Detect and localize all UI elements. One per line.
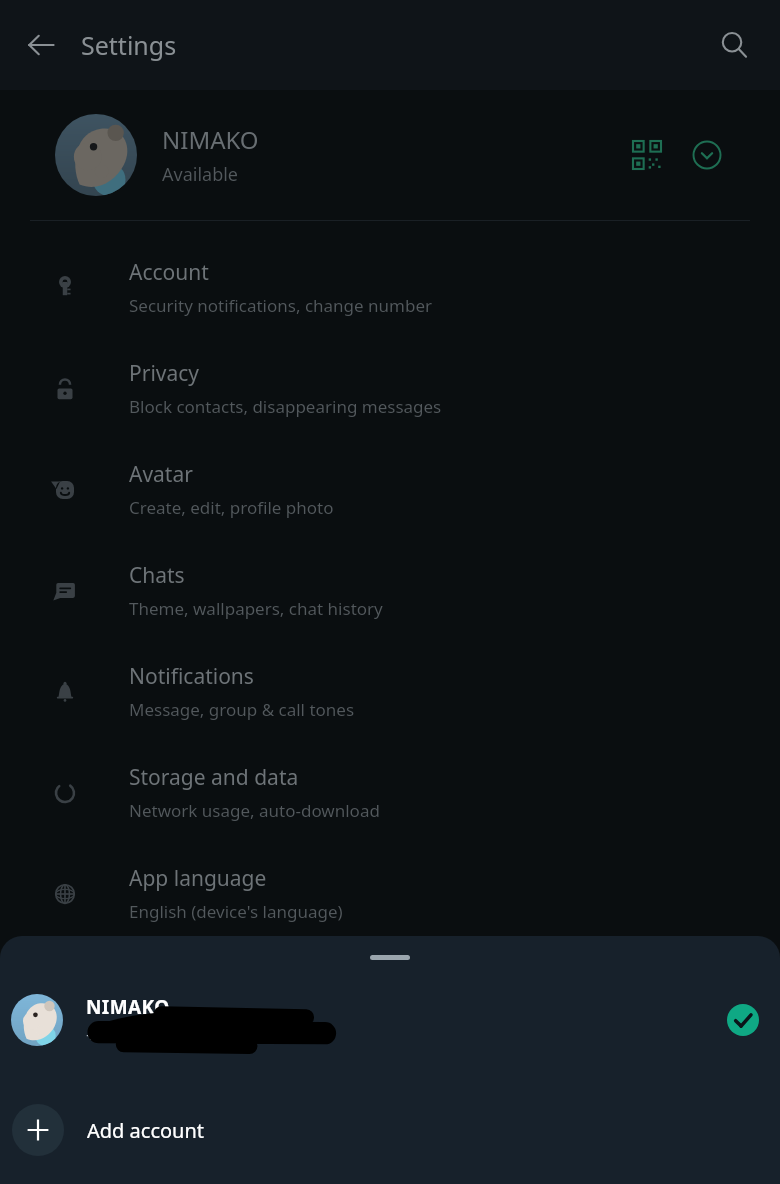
- button[interactable]: Expand accounts: [679, 127, 735, 183]
- staticText: English (device's language): [129, 900, 343, 923]
- button[interactable]: Add account: [0, 1080, 780, 1180]
- staticText: App language: [129, 864, 267, 893]
- staticText: Block contacts, disappearing messages: [129, 395, 442, 418]
- staticText: Add account: [87, 1117, 205, 1144]
- staticText: Storage and data: [129, 763, 299, 792]
- staticText: Security notifications, change number: [129, 294, 433, 317]
- staticText: Theme, wallpapers, chat history: [129, 597, 383, 620]
- staticText: +00 000 000 0000: [86, 1024, 226, 1047]
- staticText: Message, group & call tones: [129, 698, 355, 721]
- staticText: Settings: [81, 28, 177, 62]
- button[interactable]: Avatar: [0, 439, 780, 540]
- staticText: NIMAKO: [162, 123, 259, 156]
- button[interactable]: QR code: [619, 127, 675, 183]
- button[interactable]: Search: [704, 15, 764, 75]
- button[interactable]: NIMAKO: [0, 970, 780, 1070]
- button[interactable]: Storage and data: [0, 742, 780, 843]
- button[interactable]: Account: [0, 237, 780, 338]
- staticText: Create, edit, profile photo: [129, 496, 334, 519]
- button[interactable]: App language: [0, 843, 780, 944]
- button[interactable]: Notifications: [0, 641, 780, 742]
- staticText: Network usage, auto-download: [129, 799, 380, 822]
- button[interactable]: Chats: [0, 540, 780, 641]
- button[interactable]: Privacy: [0, 338, 780, 439]
- staticText: NIMAKO: [86, 994, 170, 1020]
- staticText: Account: [129, 258, 209, 287]
- staticText: Privacy: [129, 359, 200, 388]
- staticText: Avatar: [129, 460, 193, 489]
- staticText: Available: [162, 162, 238, 187]
- button[interactable]: Back: [10, 14, 72, 76]
- button[interactable]: Selected account: [715, 992, 771, 1048]
- staticText: Notifications: [129, 662, 254, 691]
- staticText: Chats: [129, 561, 185, 590]
- button[interactable]: NIMAKO: [0, 90, 780, 220]
